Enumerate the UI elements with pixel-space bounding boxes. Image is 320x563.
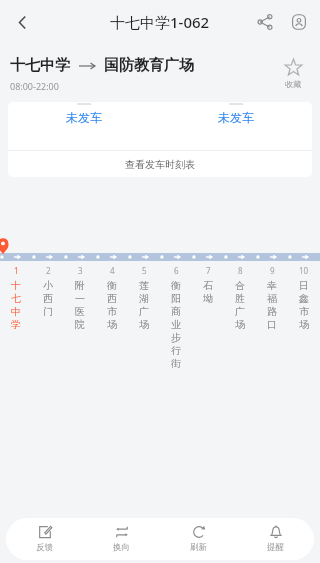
button[interactable]: 5 <box>128 265 160 331</box>
staticText: 7 <box>206 265 211 276</box>
staticText: 十七中学 <box>10 56 70 75</box>
staticText: 场 <box>235 318 245 331</box>
staticText: 口 <box>267 318 277 331</box>
button[interactable]: 查看发车时刻表 <box>8 151 312 177</box>
staticText: 坳 <box>203 292 213 305</box>
staticText: 七 <box>11 292 21 305</box>
staticText: 08:00-22:00 <box>10 80 59 92</box>
staticText: 市 <box>299 305 309 318</box>
button[interactable]: 换向 <box>83 518 160 560</box>
staticText: 步 <box>171 331 181 344</box>
button[interactable]: 7 <box>192 265 224 305</box>
staticText: 十七中学1-062 <box>110 12 210 32</box>
staticText: 提醒 <box>267 542 284 553</box>
staticText: 10 <box>299 265 309 276</box>
staticText: 换向 <box>113 542 130 553</box>
staticText: 市 <box>107 305 117 318</box>
staticText: 西 <box>43 292 53 305</box>
staticText: 收藏 <box>285 79 301 89</box>
button[interactable]: Back <box>0 0 44 44</box>
staticText: 5 <box>142 265 147 276</box>
staticText: 刷新 <box>190 542 207 553</box>
button[interactable]: 9 <box>256 265 288 331</box>
staticText: 阳 <box>171 292 181 305</box>
staticText: 衡 <box>107 279 117 292</box>
staticText: 场 <box>107 318 117 331</box>
button[interactable]: 1 <box>0 265 32 331</box>
staticText: 3 <box>78 265 83 276</box>
staticText: 西 <box>107 292 117 305</box>
staticText: 街 <box>171 357 181 370</box>
button[interactable]: 反馈 <box>6 518 83 560</box>
button[interactable]: 未发车 <box>160 102 312 125</box>
staticText: 4 <box>110 265 115 276</box>
staticText: 石 <box>203 279 213 292</box>
staticText: 门 <box>43 305 53 318</box>
staticText: 行 <box>171 344 181 357</box>
staticText: 广 <box>139 305 149 318</box>
button[interactable]: 10 <box>288 265 320 331</box>
staticText: 查看发车时刻表 <box>125 158 195 171</box>
staticText: 莲 <box>139 279 149 292</box>
staticText: 日 <box>299 279 309 292</box>
staticText: 鑫 <box>299 292 309 305</box>
button[interactable]: 收藏 <box>272 56 314 89</box>
button[interactable]: 2 <box>32 265 64 318</box>
staticText: 中 <box>11 305 21 318</box>
button[interactable]: Profile <box>282 5 316 39</box>
staticText: 8 <box>238 265 243 276</box>
staticText: 场 <box>139 318 149 331</box>
staticText: 学 <box>11 318 21 331</box>
staticText: 1 <box>14 265 19 276</box>
staticText: 未发车 <box>66 110 102 125</box>
staticText: 9 <box>270 265 275 276</box>
staticText: 福 <box>267 292 277 305</box>
staticText: 小 <box>43 279 53 292</box>
button[interactable]: 6 <box>160 265 192 370</box>
staticText: 幸 <box>267 279 277 292</box>
button[interactable]: 刷新 <box>160 518 237 560</box>
staticText: 衡 <box>171 279 181 292</box>
staticText: 路 <box>267 305 277 318</box>
staticText: 湖 <box>139 292 149 305</box>
button[interactable]: 4 <box>96 265 128 331</box>
staticText: 医 <box>75 305 85 318</box>
staticText: 一 <box>75 292 85 305</box>
staticText: 国防教育广场 <box>104 56 194 75</box>
staticText: 业 <box>171 318 181 331</box>
staticText: 2 <box>46 265 51 276</box>
staticText: 商 <box>171 305 181 318</box>
staticText: 反馈 <box>36 542 53 553</box>
staticText: 院 <box>75 318 85 331</box>
button[interactable]: 未发车 <box>8 102 160 125</box>
staticText: 未发车 <box>218 110 254 125</box>
staticText: 十 <box>11 279 21 292</box>
button[interactable]: 提醒 <box>237 518 314 560</box>
staticText: 6 <box>174 265 179 276</box>
staticText: 场 <box>299 318 309 331</box>
staticText: 胜 <box>235 292 245 305</box>
button[interactable]: Share <box>248 5 282 39</box>
staticText: 附 <box>75 279 85 292</box>
staticText: 广 <box>235 305 245 318</box>
button[interactable]: 8 <box>224 265 256 331</box>
button[interactable]: 3 <box>64 265 96 331</box>
staticText: 合 <box>235 279 245 292</box>
